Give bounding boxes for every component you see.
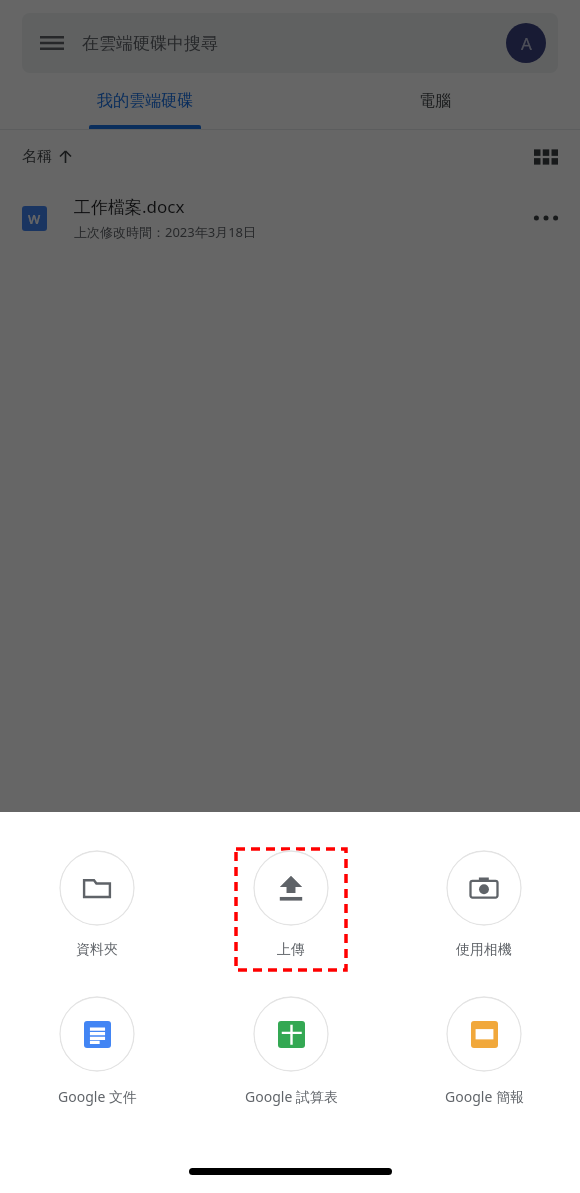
button[interactable]: Google 試算表 [236,995,346,1116]
staticText: A [521,32,532,55]
staticText: 電腦 [419,91,451,111]
button[interactable]: 電腦 [290,73,580,129]
button[interactable]: Menu [22,13,558,73]
staticText: Google 試算表 [245,1087,338,1106]
staticText: 我的雲端硬碟 [97,91,193,111]
button[interactable]: More options [534,206,558,230]
button[interactable]: Account [506,23,546,63]
button[interactable]: 名稱 [22,147,72,166]
staticText: 使用相機 [456,941,512,959]
staticText: 工作檔案.docx [74,195,185,218]
button[interactable]: Google 文件 [42,995,152,1116]
other: Menu [40,31,64,55]
staticText: 名稱 [22,147,52,166]
staticText: 上次修改時間：2023年3月18日 [74,223,257,241]
staticText: Google 簡報 [445,1087,524,1106]
button[interactable]: 使用相機 [429,849,539,970]
button[interactable]: 資料夾 [42,849,152,970]
button[interactable]: Grid view [534,145,558,169]
button[interactable]: 上傳 [236,849,346,970]
staticText: 上傳 [277,941,305,959]
staticText: Google 文件 [58,1087,137,1106]
button[interactable]: 我的雲端硬碟 [0,73,290,129]
staticText: 資料夾 [76,941,118,959]
staticText: W [28,210,41,228]
button[interactable]: Google 簡報 [429,995,539,1116]
button[interactable]: W [0,183,580,253]
staticText: 在雲端硬碟中搜尋 [82,33,218,54]
